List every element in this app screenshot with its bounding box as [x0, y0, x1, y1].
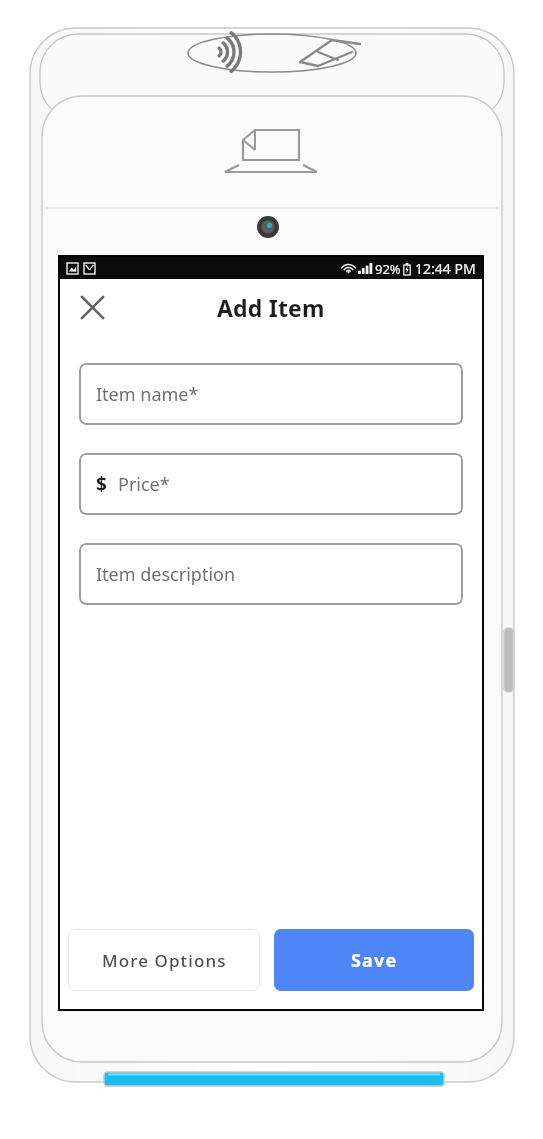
staticText: $ [96, 471, 107, 497]
button[interactable]: Item description [79, 543, 463, 605]
button[interactable]: Item name* [79, 363, 463, 425]
staticText: Add Item [217, 292, 325, 323]
staticText: 12:44 PM [415, 259, 476, 278]
button[interactable]: $ [79, 453, 463, 515]
staticText: More Options [102, 949, 227, 972]
staticText: 92% [375, 260, 401, 278]
staticText: Item description [96, 562, 236, 587]
button[interactable]: Close [70, 285, 114, 329]
button[interactable]: More Options [68, 929, 260, 991]
button[interactable]: Save [274, 929, 474, 991]
staticText: Price* [118, 472, 170, 497]
staticText: Item name* [96, 382, 199, 407]
staticText: Save [351, 948, 398, 973]
